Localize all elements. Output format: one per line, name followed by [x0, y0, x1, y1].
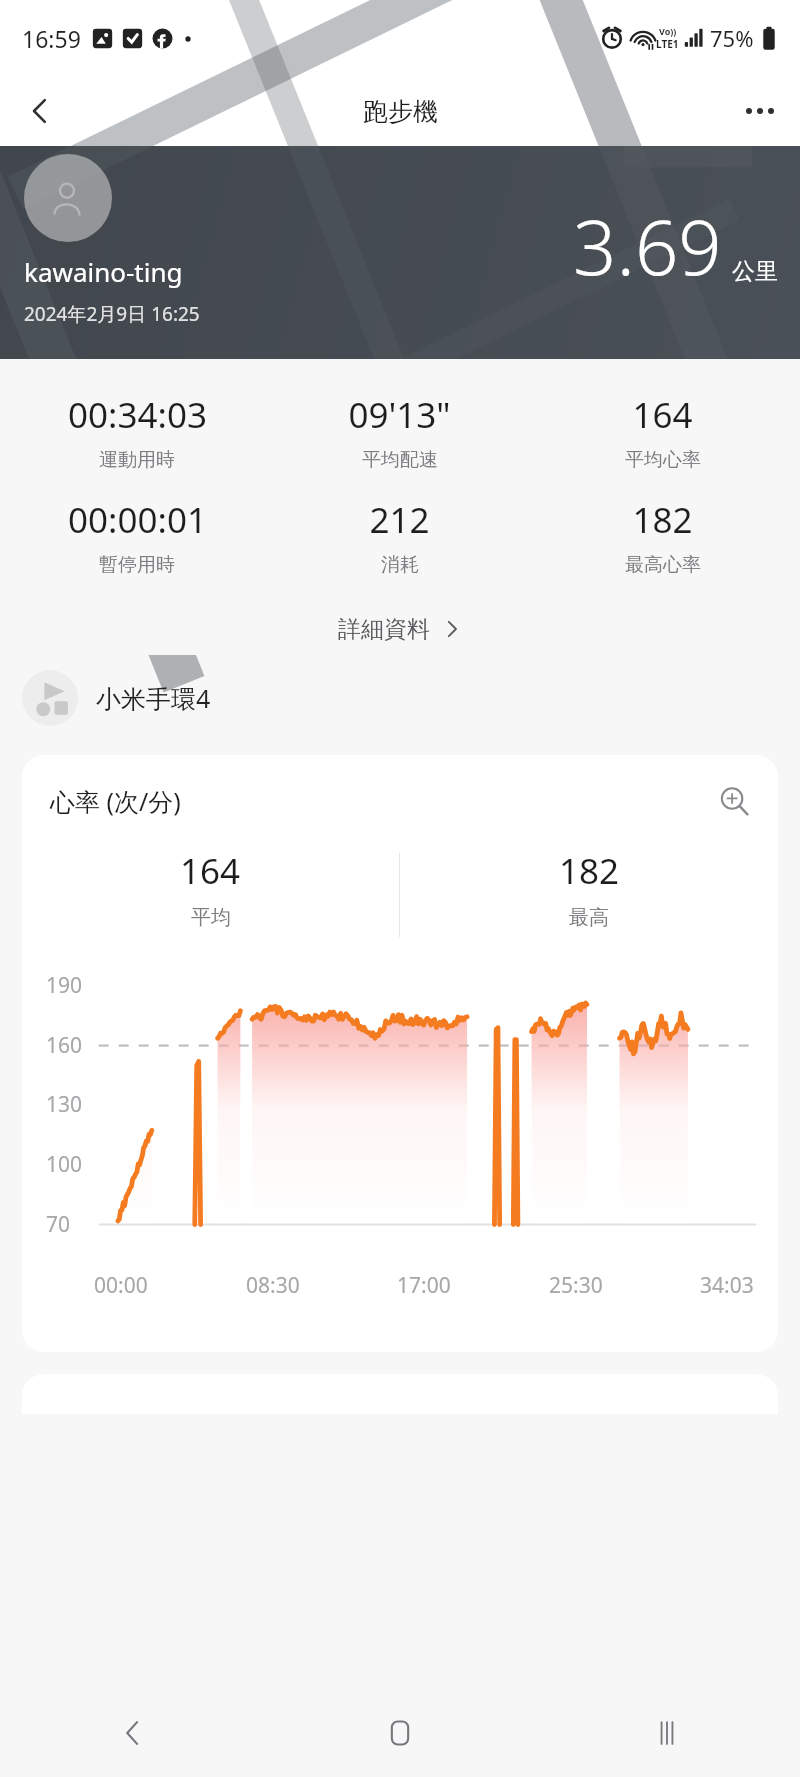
staticText: 3.69 [573, 194, 722, 298]
button[interactable]: Recent apps [533, 1689, 800, 1777]
staticText: 最高 [569, 905, 609, 930]
staticText: 70 [46, 1210, 71, 1239]
staticText: 100 [46, 1150, 83, 1179]
staticText: 消耗 [381, 553, 419, 577]
button[interactable]: 心率 (次/分) [22, 755, 778, 1352]
staticText: 公里 [732, 257, 778, 286]
staticText: 190 [46, 971, 83, 1000]
staticText: 跑步機 [363, 96, 438, 127]
staticText: 182 [559, 847, 620, 895]
staticText: 75% [710, 23, 754, 53]
staticText: 心率 (次/分) [50, 784, 181, 818]
staticText: 暫停用時 [99, 553, 175, 577]
button[interactable]: More options [732, 83, 788, 139]
staticText: 詳細資料 [338, 615, 430, 644]
button[interactable]: 詳細資料 [0, 603, 800, 655]
button[interactable]: Back [0, 1689, 266, 1777]
staticText: 16:59 [22, 23, 81, 54]
staticText: Vo)) [659, 25, 677, 37]
staticText: 164 [180, 847, 241, 895]
staticText: 平均心率 [625, 448, 701, 472]
staticText: 00:34:03 [68, 391, 207, 439]
staticText: 小米手環4 [96, 681, 211, 715]
button[interactable]: kawaino-ting [0, 146, 800, 359]
staticText: 00:00 [94, 1271, 148, 1300]
staticText: 09'13" [348, 391, 451, 439]
staticText: 160 [46, 1031, 83, 1060]
staticText: kawaino-ting [24, 254, 183, 289]
staticText: 182 [632, 496, 693, 544]
staticText: 平均配速 [362, 448, 438, 472]
staticText: 17:00 [397, 1271, 451, 1300]
staticText: 00:00:01 [68, 496, 207, 544]
staticText: 運動用時 [99, 448, 175, 472]
button[interactable]: Home [266, 1689, 533, 1777]
staticText: 164 [632, 391, 693, 439]
staticText: 08:30 [246, 1271, 300, 1300]
button[interactable]: Zoom chart [714, 781, 754, 821]
button[interactable]: 小米手環4 [0, 655, 800, 741]
staticText: 平均 [191, 905, 231, 930]
staticText: LTE1 [656, 37, 679, 51]
staticText: 212 [369, 496, 430, 544]
staticText: 最高心率 [625, 553, 701, 577]
staticText: 25:30 [549, 1271, 603, 1300]
staticText: 2024年2月9日 16:25 [24, 301, 200, 327]
button[interactable]: Back [12, 83, 68, 139]
staticText: 34:03 [700, 1271, 754, 1300]
staticText: 130 [46, 1090, 83, 1119]
